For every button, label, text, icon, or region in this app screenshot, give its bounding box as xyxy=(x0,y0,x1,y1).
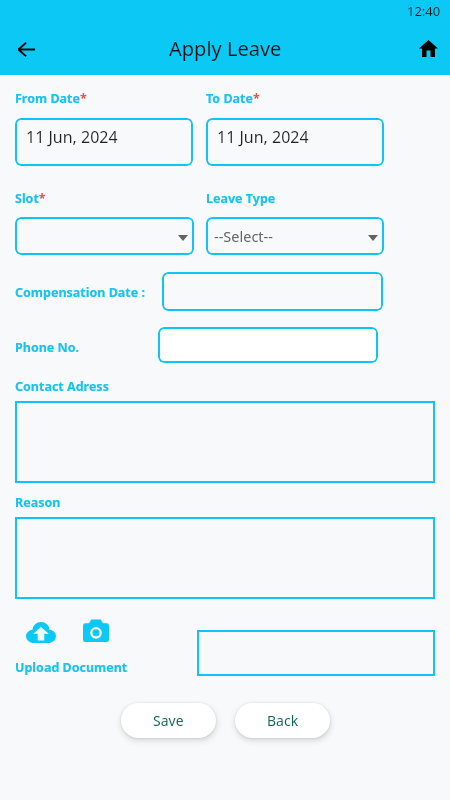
button[interactable]: Back xyxy=(235,703,330,738)
button[interactable]: From Date xyxy=(15,118,193,166)
button[interactable]: Reason xyxy=(15,517,435,599)
button[interactable]: Back xyxy=(8,31,44,67)
button[interactable]: Upload document xyxy=(24,619,58,645)
button[interactable]: Attached document xyxy=(197,630,435,676)
button[interactable]: Contact Adress xyxy=(15,401,435,483)
staticText: Back xyxy=(267,711,299,730)
button[interactable]: Compensation Date xyxy=(162,272,383,311)
button[interactable]: To Date xyxy=(206,118,384,166)
staticText: Reason xyxy=(15,494,61,511)
staticText: To Date* xyxy=(206,90,260,107)
staticText: Upload Document xyxy=(15,659,128,676)
button[interactable]: Take photo xyxy=(81,617,111,643)
staticText: From Date* xyxy=(15,90,87,107)
button[interactable]: Leave Type xyxy=(206,217,384,255)
button[interactable]: Phone No. xyxy=(158,327,378,363)
staticText: Compensation Date : xyxy=(15,284,145,301)
staticText: Phone No. xyxy=(15,339,80,356)
staticText: Apply Leave xyxy=(169,35,282,62)
staticText: --Select-- xyxy=(214,226,273,246)
button[interactable]: Slot xyxy=(15,217,194,255)
staticText: 12:40 xyxy=(407,2,441,20)
staticText: 11 Jun, 2024 xyxy=(217,126,309,148)
button[interactable]: Home xyxy=(410,30,446,66)
staticText: 11 Jun, 2024 xyxy=(26,126,118,148)
staticText: Save xyxy=(153,711,184,730)
staticText: Leave Type xyxy=(206,190,276,207)
staticText: Contact Adress xyxy=(15,378,109,395)
staticText: Slot* xyxy=(15,190,46,207)
button[interactable]: Save xyxy=(121,703,216,738)
